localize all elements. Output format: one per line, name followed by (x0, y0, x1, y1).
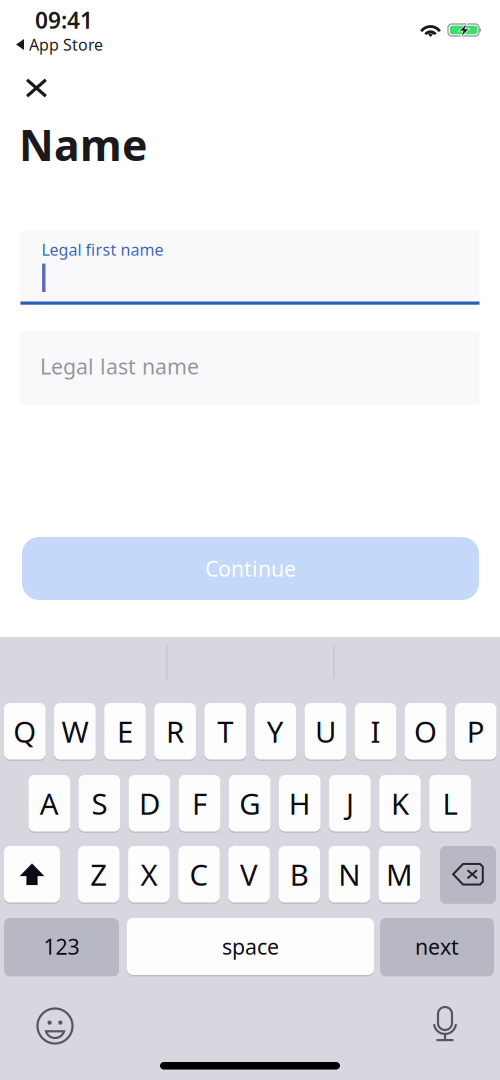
button[interactable]: Emoji keyboard (32, 1003, 78, 1049)
button[interactable]: F (179, 775, 220, 833)
staticText: A (40, 784, 59, 823)
staticText: O (414, 712, 437, 751)
staticText: Legal last name (40, 352, 199, 380)
staticText: S (91, 784, 107, 823)
staticText: space (222, 932, 279, 961)
button[interactable]: Legal last name (20, 331, 479, 405)
button[interactable]: Z (78, 846, 120, 904)
button[interactable]: Continue (22, 537, 479, 600)
staticText: Continue (205, 554, 296, 583)
button[interactable]: T (204, 703, 246, 761)
staticText: V (240, 855, 258, 894)
staticText: I (370, 712, 380, 751)
button[interactable]: Q (4, 703, 46, 761)
button[interactable]: J (329, 775, 371, 833)
staticText: F (192, 784, 207, 823)
staticText: 09:41 (35, 5, 93, 35)
staticText: T (217, 712, 233, 751)
button[interactable]: L (429, 775, 471, 833)
staticText: X (140, 855, 157, 894)
button[interactable]: App Store (29, 34, 103, 55)
staticText: C (189, 855, 208, 894)
staticText: P (467, 712, 485, 751)
staticText: J (346, 784, 354, 823)
staticText: G (239, 784, 260, 823)
button[interactable]: N (328, 846, 370, 904)
button[interactable]: W (54, 703, 96, 761)
staticText: Y (267, 712, 284, 751)
staticText: Legal first name (41, 239, 163, 260)
staticText: H (289, 784, 311, 823)
staticText: W (61, 712, 88, 751)
button[interactable]: M (379, 846, 420, 904)
staticText: L (443, 784, 458, 823)
button[interactable]: E (104, 703, 146, 761)
staticText: Q (13, 712, 36, 751)
staticText: M (386, 855, 413, 894)
button[interactable]: C (178, 846, 220, 904)
button[interactable]: A (28, 775, 70, 833)
button[interactable]: D (129, 775, 170, 833)
staticText: D (139, 784, 160, 823)
button[interactable]: Shift (4, 846, 60, 904)
button[interactable]: X (128, 846, 170, 904)
staticText: Name (19, 116, 147, 173)
staticText: N (338, 855, 360, 894)
button[interactable]: G (229, 775, 270, 833)
button[interactable]: 123 (4, 918, 119, 977)
staticText: Z (90, 855, 107, 894)
button[interactable]: B (278, 846, 320, 904)
button[interactable]: O (405, 703, 446, 761)
button[interactable]: H (279, 775, 321, 833)
button[interactable]: P (455, 703, 496, 761)
staticText: K (391, 784, 409, 823)
button[interactable]: Delete (440, 846, 496, 904)
button[interactable]: space (127, 918, 374, 977)
button[interactable]: S (79, 775, 120, 833)
staticText: App Store (29, 34, 103, 55)
button[interactable]: I (355, 703, 396, 761)
staticText: 123 (43, 932, 79, 961)
button[interactable]: next (380, 918, 494, 977)
staticText: R (166, 712, 184, 751)
button[interactable]: K (379, 775, 421, 833)
button[interactable]: U (305, 703, 346, 761)
button[interactable]: Close (13, 65, 59, 111)
staticText: U (315, 712, 336, 751)
button[interactable]: V (228, 846, 270, 904)
staticText: B (290, 855, 309, 894)
button[interactable]: Dictation (422, 1003, 468, 1049)
button[interactable]: R (154, 703, 196, 761)
staticText: next (415, 932, 459, 961)
staticText: E (117, 712, 133, 751)
button[interactable]: Y (254, 703, 296, 761)
button[interactable]: Legal first name (20, 230, 479, 305)
